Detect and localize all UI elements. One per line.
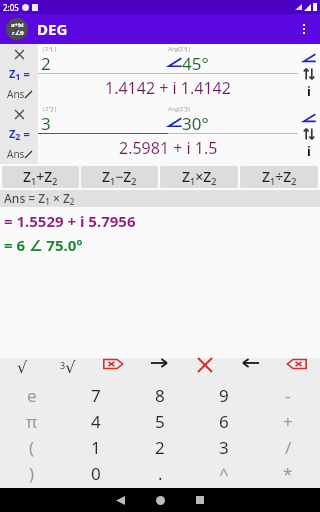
staticText: i xyxy=(307,142,311,158)
button[interactable]: 30° xyxy=(168,112,298,133)
button[interactable]: Ans xyxy=(0,144,38,164)
staticText: 7 xyxy=(91,384,101,407)
staticText: 0 xyxy=(91,462,101,485)
staticText: ^ xyxy=(219,462,229,485)
button[interactable]: Polar form xyxy=(298,50,320,66)
button[interactable]: ) xyxy=(0,462,64,485)
button[interactable]: 0 xyxy=(64,462,128,485)
staticText: ( xyxy=(29,436,35,459)
staticText: 1.4142 + i 1.4142 xyxy=(105,77,231,99)
staticText: |Z1| xyxy=(42,44,58,52)
button[interactable]: 3 xyxy=(38,112,168,133)
button[interactable]: Clear Z2 xyxy=(0,104,38,124)
button[interactable]: / xyxy=(256,436,320,459)
button[interactable]: Recents xyxy=(180,488,220,512)
button[interactable]: Z1×Z2 xyxy=(160,166,238,188)
staticText: 1 xyxy=(91,436,101,459)
button[interactable]: Move left xyxy=(228,358,274,368)
staticText: Ans xyxy=(7,87,25,101)
button[interactable]: Clear Z1 xyxy=(0,44,38,64)
staticText: π xyxy=(26,410,38,433)
staticText: 3√ xyxy=(60,358,76,377)
button[interactable]: √ xyxy=(0,358,45,377)
button[interactable]: Cube root xyxy=(45,358,90,377)
staticText: Z1 = xyxy=(9,66,30,83)
staticText: + xyxy=(283,410,293,433)
button[interactable]: Swap xyxy=(298,66,320,82)
staticText: ) xyxy=(29,462,35,485)
button[interactable]: - xyxy=(256,384,320,407)
staticText: = 1.5529 + i 5.7956 xyxy=(4,211,136,231)
button[interactable]: 45° xyxy=(168,52,298,73)
button[interactable]: ( xyxy=(0,436,64,459)
button[interactable]: Z1−Z2 xyxy=(81,166,158,188)
staticText: 45° xyxy=(182,52,209,73)
staticText: . xyxy=(158,462,163,485)
button[interactable]: Home xyxy=(140,488,180,512)
staticText: r∠θ xyxy=(12,29,24,37)
button[interactable]: e xyxy=(0,384,64,407)
staticText: - xyxy=(285,384,291,407)
staticText: Z1+Z2 xyxy=(23,167,58,187)
staticText: e xyxy=(27,384,37,407)
button[interactable]: Z2 = xyxy=(0,124,38,144)
staticText: 6 xyxy=(219,410,229,433)
button[interactable]: Z1 = xyxy=(0,64,38,84)
button[interactable]: Move right xyxy=(136,358,182,368)
button[interactable]: 7 xyxy=(64,384,128,407)
staticText: / xyxy=(285,436,292,459)
staticText: 8 xyxy=(155,384,165,407)
staticText: 2 xyxy=(41,52,51,73)
button[interactable]: Z1+Z2 xyxy=(2,166,79,188)
staticText: Z1÷Z2 xyxy=(262,167,297,187)
staticText: 2 xyxy=(155,436,165,459)
staticText: 9 xyxy=(219,384,229,407)
staticText: DEG xyxy=(37,19,68,39)
staticText: 30° xyxy=(182,112,209,133)
staticText: 3 xyxy=(41,112,51,133)
button[interactable]: + xyxy=(256,410,320,433)
button[interactable]: 4 xyxy=(64,410,128,433)
button[interactable]: 2 xyxy=(38,52,168,73)
button[interactable]: 2 xyxy=(128,436,192,459)
button[interactable]: Delete forward xyxy=(90,358,136,370)
staticText: |Z2| xyxy=(42,104,58,112)
staticText: Z1−Z2 xyxy=(102,167,137,187)
button[interactable]: . xyxy=(128,462,192,485)
button[interactable]: Ans xyxy=(0,84,38,104)
button[interactable]: Backspace xyxy=(274,358,320,370)
staticText: a+bi xyxy=(11,21,24,29)
button[interactable]: 5 xyxy=(128,410,192,433)
staticText: 4 xyxy=(91,410,101,433)
button[interactable]: More options xyxy=(292,17,316,41)
button[interactable]: π xyxy=(0,410,64,433)
staticText: Z2 = xyxy=(9,126,30,143)
button[interactable]: 1 xyxy=(64,436,128,459)
button[interactable]: Imaginary form xyxy=(298,142,320,158)
staticText: 5 xyxy=(155,410,165,433)
staticText: Arg(Z2) xyxy=(168,104,191,112)
button[interactable]: 8 xyxy=(128,384,192,407)
button[interactable]: 9 xyxy=(192,384,256,407)
button[interactable]: 6 xyxy=(192,410,256,433)
button[interactable]: ^ xyxy=(192,462,256,485)
staticText: * xyxy=(283,462,293,485)
staticText: Ans xyxy=(7,147,25,161)
button[interactable]: Clear xyxy=(182,358,228,372)
staticText: = 6 ∠ 75.0° xyxy=(4,235,83,255)
staticText: Ans = Z1 × Z2 xyxy=(4,190,75,207)
button[interactable]: Polar form xyxy=(298,110,320,126)
staticText: 3 xyxy=(219,436,229,459)
staticText: √ xyxy=(17,358,28,377)
button[interactable]: * xyxy=(256,462,320,485)
button[interactable]: Z1÷Z2 xyxy=(240,166,318,188)
staticText: 2.5981 + i 1.5 xyxy=(119,137,218,159)
button[interactable]: Imaginary form xyxy=(298,82,320,98)
staticText: i xyxy=(307,82,311,98)
button[interactable]: Back xyxy=(100,488,140,512)
staticText: Arg(Z1) xyxy=(168,44,191,52)
staticText: Z1×Z2 xyxy=(182,167,217,187)
button[interactable]: 3 xyxy=(192,436,256,459)
button[interactable]: Swap xyxy=(298,126,320,142)
staticText: 2:05 xyxy=(3,2,19,13)
